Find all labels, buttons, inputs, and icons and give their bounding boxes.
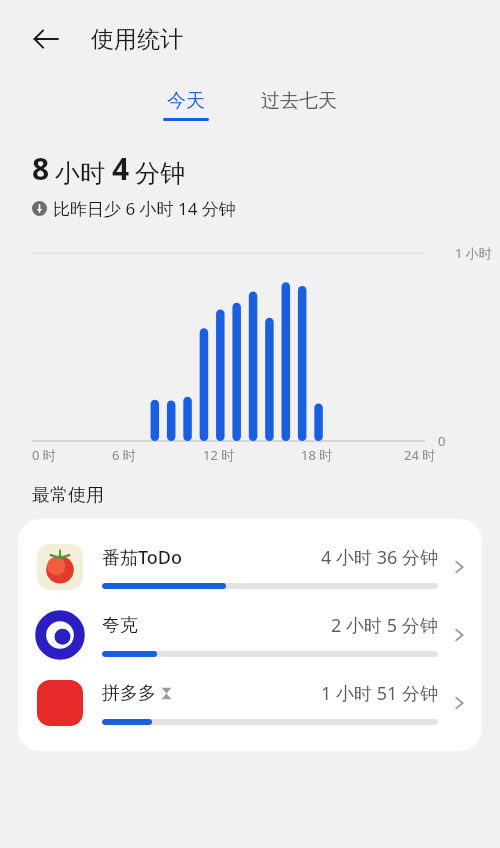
button[interactable]: 今天 [157, 85, 215, 125]
staticText: 4 小时 36 分钟 [321, 545, 438, 570]
staticText: 1 小时 [455, 244, 492, 262]
button[interactable]: Back [22, 15, 70, 63]
staticText: 分钟 [135, 158, 185, 189]
staticText: 番茄ToDo [102, 545, 183, 570]
staticText: 4 [112, 148, 130, 189]
button[interactable]: 番茄ToDo [18, 533, 482, 601]
staticText: 小时 [55, 158, 105, 189]
staticText: 1 小时 51 分钟 [321, 681, 438, 706]
staticText: 拼多多 [102, 682, 156, 705]
staticText: 使用统计 [91, 25, 183, 54]
staticText: 过去七天 [261, 89, 337, 113]
button[interactable]: 夸克 [18, 601, 482, 669]
staticText: 2 小时 5 分钟 [331, 613, 438, 638]
staticText: 夸克 [102, 614, 138, 637]
staticText: 6 时 [112, 446, 136, 464]
staticText: 比昨日少 6 小时 14 分钟 [53, 197, 236, 220]
button[interactable]: 拼多多 [18, 669, 482, 737]
staticText: 0 时 [32, 446, 56, 464]
staticText: 0 [438, 432, 446, 450]
staticText: 24 时 [404, 446, 436, 464]
button[interactable]: 过去七天 [255, 89, 343, 121]
staticText: 8 [32, 148, 50, 189]
staticText: 最常使用 [32, 484, 104, 507]
staticText: 今天 [167, 89, 205, 113]
staticText: 12 时 [203, 446, 235, 464]
staticText: 18 时 [301, 446, 333, 464]
